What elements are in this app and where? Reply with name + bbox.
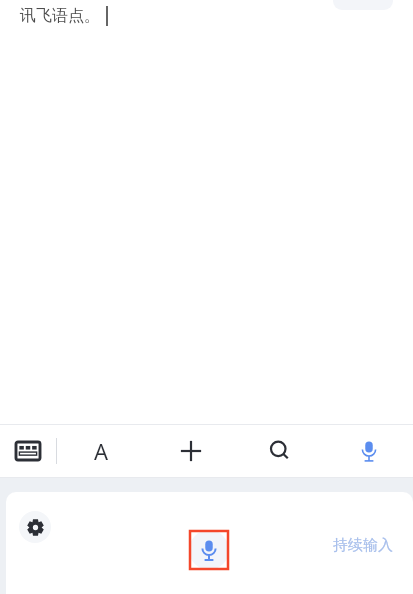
- staticText: 讯飞语点。: [20, 6, 100, 26]
- staticText: 持续输入: [333, 536, 393, 555]
- staticText: A: [94, 436, 109, 466]
- button[interactable]: Settings: [19, 511, 51, 543]
- button[interactable]: Record: [190, 531, 228, 569]
- button[interactable]: Search: [235, 424, 324, 478]
- button[interactable]: 持续输入: [333, 536, 393, 555]
- button[interactable]: Voice input: [324, 424, 413, 478]
- button[interactable]: Font: [57, 424, 146, 478]
- button[interactable]: Add: [146, 424, 235, 478]
- button[interactable]: Keyboard: [0, 424, 56, 478]
